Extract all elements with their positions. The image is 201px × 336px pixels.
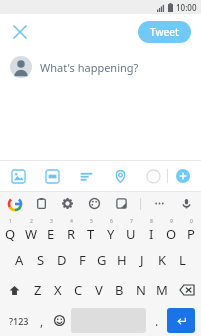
button[interactable]: Backspace — [172, 275, 201, 305]
button[interactable]: 1 — [0, 215, 21, 245]
staticText: ?123 — [9, 315, 29, 327]
staticText: Tweet — [150, 25, 179, 39]
staticText: K — [158, 251, 167, 269]
button[interactable]: Tweet — [138, 21, 191, 43]
button[interactable]: N — [130, 275, 151, 305]
button[interactable]: Z — [28, 275, 48, 305]
button[interactable]: J — [132, 245, 152, 275]
staticText: 2 — [30, 218, 33, 225]
button[interactable]: One-handed mode — [113, 195, 130, 212]
staticText: W — [25, 225, 38, 243]
staticText: 5 — [90, 218, 93, 225]
staticText: 0 — [190, 218, 193, 225]
button[interactable]: Settings — [59, 195, 76, 212]
staticText: Z — [34, 281, 42, 299]
staticText: What's happening? — [40, 60, 139, 75]
button[interactable]: G — [92, 245, 112, 275]
button[interactable]: D — [51, 245, 72, 275]
button[interactable]: 4 — [61, 215, 81, 245]
button[interactable]: 8 — [141, 215, 161, 245]
button[interactable]: A — [9, 245, 30, 275]
staticText: 8 — [150, 218, 153, 225]
staticText: S — [37, 251, 45, 269]
staticText: O — [166, 225, 177, 243]
button[interactable]: Close — [8, 20, 32, 44]
staticText: , — [40, 313, 44, 329]
button[interactable]: C — [68, 275, 88, 305]
staticText: Y — [107, 225, 115, 243]
staticText: 10:00 — [176, 2, 197, 13]
button[interactable]: V — [88, 275, 109, 305]
button[interactable]: S — [30, 245, 51, 275]
button[interactable]: Enter — [167, 308, 195, 333]
button[interactable]: 3 — [41, 215, 61, 245]
staticText: . — [155, 313, 159, 329]
staticText: B — [115, 281, 124, 299]
button[interactable]: Add tweet — [173, 166, 193, 186]
staticText: A — [15, 251, 24, 269]
staticText: L — [179, 251, 186, 269]
button[interactable]: Add location — [110, 166, 130, 186]
button[interactable]: X — [48, 275, 68, 305]
staticText: X — [54, 281, 62, 299]
staticText: 1 — [9, 218, 12, 225]
button[interactable]: Voice input — [178, 195, 195, 212]
staticText: I — [149, 225, 154, 243]
button[interactable]: Shift — [0, 275, 28, 305]
staticText: 7 — [130, 218, 133, 225]
staticText: 4 — [70, 218, 73, 225]
staticText: E — [47, 225, 55, 243]
staticText: F — [79, 251, 86, 269]
staticText: D — [57, 251, 67, 269]
staticText: 3 — [50, 218, 53, 225]
button[interactable]: 6 — [101, 215, 121, 245]
button[interactable]: 0 — [181, 215, 201, 245]
button[interactable]: , — [33, 308, 50, 333]
staticText: H — [117, 251, 127, 269]
button[interactable]: Character count — [144, 167, 162, 185]
button[interactable]: 5 — [81, 215, 101, 245]
button[interactable]: Clipboard — [33, 195, 50, 212]
button[interactable]: K — [152, 245, 172, 275]
button[interactable]: Add photo — [8, 166, 28, 186]
button[interactable]: ?123 — [4, 308, 33, 333]
button[interactable]: 2 — [21, 215, 41, 245]
button[interactable]: Add poll — [76, 166, 96, 186]
button[interactable]: L — [172, 245, 192, 275]
button[interactable]: 9 — [161, 215, 181, 245]
button[interactable]: B — [109, 275, 130, 305]
staticText: V — [95, 281, 103, 299]
button[interactable]: F — [72, 245, 92, 275]
button[interactable]: Emoji — [50, 308, 69, 333]
button[interactable]: H — [112, 245, 132, 275]
button[interactable]: Add GIF — [42, 166, 62, 186]
staticText: G — [97, 251, 107, 269]
staticText: 6 — [110, 218, 113, 225]
staticText: M — [156, 281, 168, 299]
staticText: T — [87, 225, 95, 243]
staticText: 9 — [170, 218, 173, 225]
staticText: P — [187, 225, 195, 243]
button[interactable]: . — [148, 308, 165, 333]
staticText: N — [136, 281, 146, 299]
button[interactable]: More options — [151, 195, 168, 212]
button[interactable]: M — [151, 275, 172, 305]
staticText: R — [67, 225, 76, 243]
staticText: J — [140, 251, 144, 269]
button[interactable]: Themes — [86, 195, 103, 212]
button[interactable]: Google — [6, 195, 24, 213]
staticText: U — [126, 225, 136, 243]
staticText: C — [74, 281, 83, 299]
staticText: Q — [5, 225, 16, 243]
button[interactable]: 7 — [121, 215, 141, 245]
